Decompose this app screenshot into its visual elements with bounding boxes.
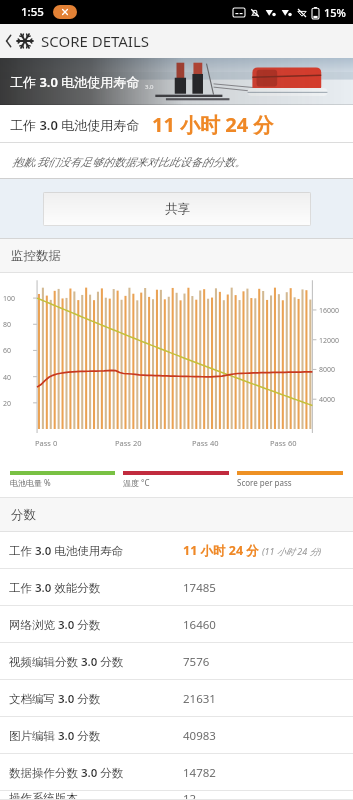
staticText: 21631	[183, 691, 216, 707]
button[interactable]: 工作 3.0 电池使用寿命	[0, 532, 353, 569]
staticText: 1:55	[21, 4, 44, 20]
staticText: (11 小时 24 分)	[262, 545, 322, 557]
staticText: Pass 20	[115, 438, 142, 448]
button[interactable]: 视频编辑分数 3.0 分数	[0, 643, 353, 680]
button[interactable]: 图片编辑 3.0 分数	[0, 717, 353, 754]
staticText: 7576	[183, 654, 210, 670]
staticText: 工作 3.0 电池使用寿命	[9, 543, 124, 559]
button[interactable]: 操作系统版本	[0, 791, 353, 800]
staticText: 15%	[324, 5, 346, 20]
staticText: 4000	[319, 395, 336, 405]
staticText: 电池电量 %	[10, 477, 51, 488]
staticText: 图片编辑 3.0 分数	[9, 728, 101, 744]
staticText: 分数	[11, 507, 36, 523]
button[interactable]: 数据操作分数 3.0 分数	[0, 754, 353, 791]
button[interactable]: 工作 3.0 效能分数	[0, 569, 353, 606]
staticText: 数据操作分数 3.0 分数	[9, 765, 124, 781]
staticText: Pass 60	[270, 438, 297, 448]
staticText: 11 小时 24 分	[183, 542, 259, 559]
staticText: SCORE DETAILS	[41, 31, 150, 51]
staticText: Score per pass	[237, 477, 292, 488]
staticText: 文档编写 3.0 分数	[9, 691, 101, 707]
staticText: 12	[183, 791, 197, 800]
staticText: 16000	[319, 306, 340, 316]
button[interactable]: Back to score details	[0, 24, 158, 58]
staticText: 监控数据	[11, 248, 61, 264]
staticText: 网络浏览 3.0 分数	[9, 617, 101, 633]
button[interactable]: 网络浏览 3.0 分数	[0, 606, 353, 643]
staticText: 共享	[165, 201, 190, 217]
staticText: 80	[3, 320, 12, 330]
staticText: 温度 °C	[123, 477, 150, 488]
staticText: 视频编辑分数 3.0 分数	[9, 654, 124, 670]
staticText: 14782	[183, 765, 216, 781]
staticText: 工作 3.0 效能分数	[9, 580, 101, 596]
staticText: 3.0	[145, 83, 154, 91]
staticText: 8000	[319, 365, 336, 375]
staticText: 11 小时 24 分	[152, 111, 274, 138]
staticText: Pass 0	[35, 438, 58, 448]
staticText: 100	[3, 294, 16, 304]
staticText: 12000	[319, 336, 340, 346]
staticText: 抱歉,我们没有足够的数据来对比此设备的分数。	[12, 154, 246, 169]
staticText: 40	[3, 373, 12, 383]
button[interactable]: 共享	[43, 192, 311, 226]
staticText: 40983	[183, 728, 216, 744]
staticText: 20	[3, 399, 12, 409]
staticText: 工作 3.0 电池使用寿命	[10, 116, 140, 134]
button[interactable]: 文档编写 3.0 分数	[0, 680, 353, 717]
staticText: 60	[3, 346, 12, 356]
staticText: 16460	[183, 617, 216, 633]
staticText: 操作系统版本	[9, 791, 78, 800]
staticText: Pass 40	[192, 438, 219, 448]
staticText: 17485	[183, 580, 216, 596]
staticText: 工作 3.0 电池使用寿命	[10, 73, 140, 91]
